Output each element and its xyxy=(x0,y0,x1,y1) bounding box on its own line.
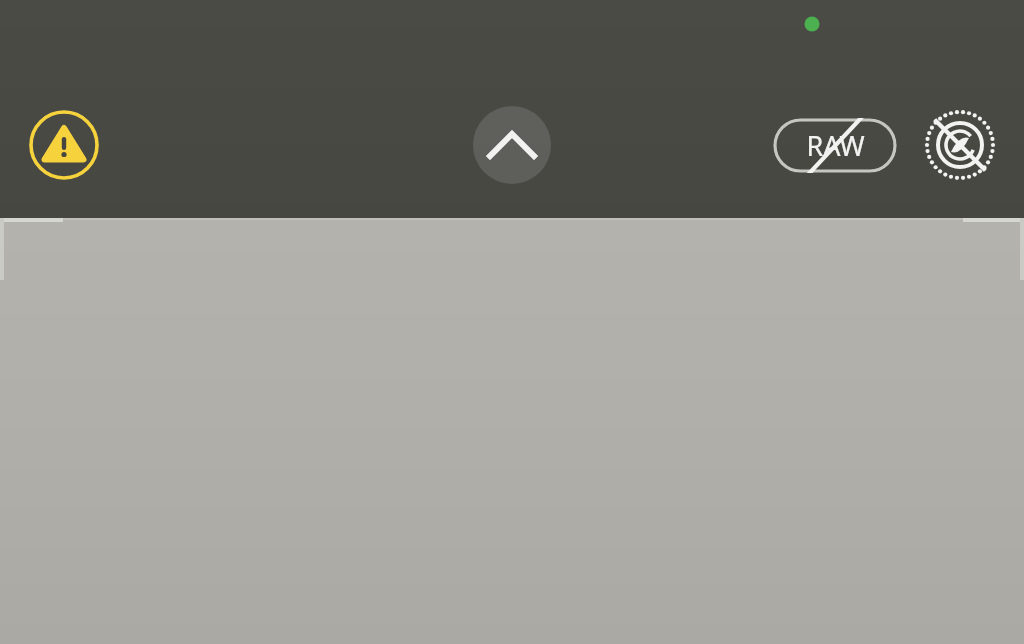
staticText: RAW xyxy=(806,127,865,164)
button[interactable]: Night Sight off xyxy=(924,109,996,181)
button[interactable]: Camera warning xyxy=(28,109,100,181)
button[interactable]: Show more settings xyxy=(473,106,551,184)
button[interactable]: RAW off xyxy=(773,118,897,173)
